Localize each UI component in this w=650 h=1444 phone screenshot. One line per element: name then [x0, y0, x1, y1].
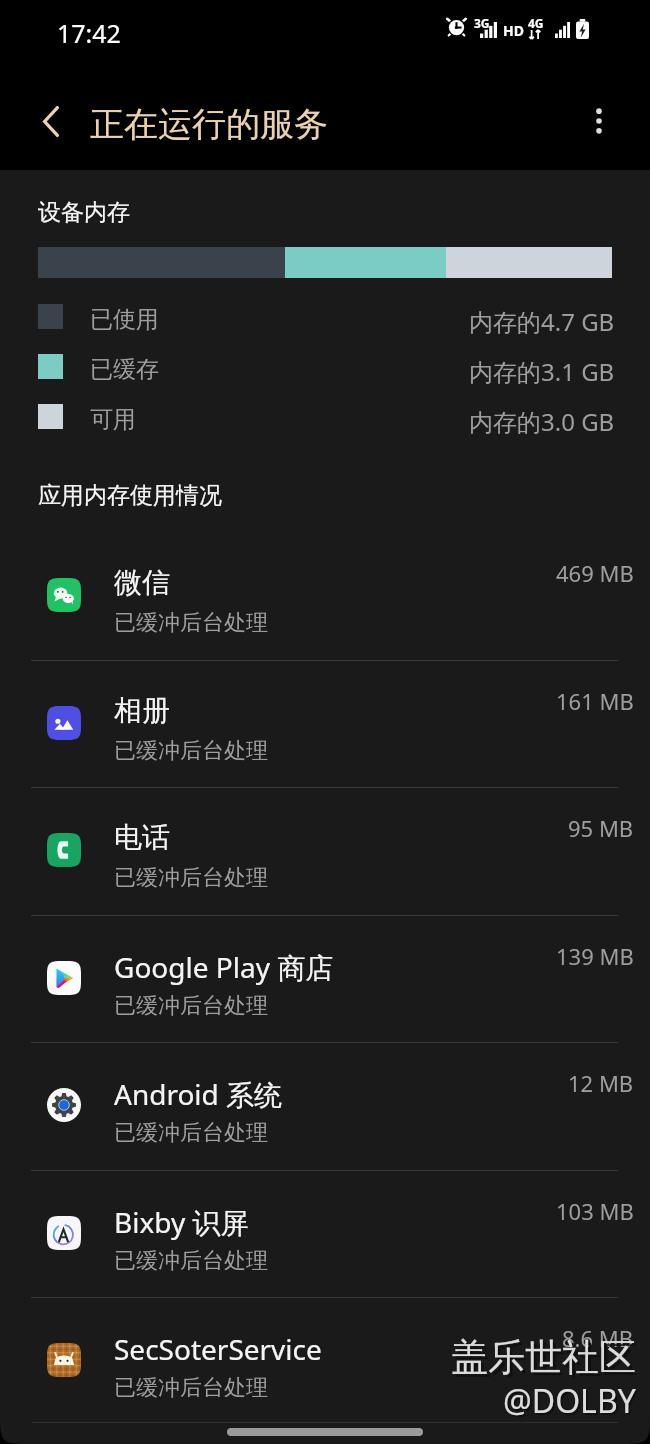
- button[interactable]: 相册: [0, 660, 650, 788]
- staticText: 103 MB: [556, 1196, 634, 1226]
- staticText: 139 MB: [556, 941, 634, 971]
- staticText: 正在运行的服务: [90, 103, 328, 146]
- staticText: 相册: [114, 693, 170, 728]
- button[interactable]: Google Play 商店: [0, 915, 650, 1043]
- staticText: 内存的3.0 GB: [469, 405, 615, 438]
- staticText: 8.6 MB: [562, 1323, 634, 1353]
- staticText: 已缓冲后台处理: [114, 992, 268, 1020]
- button[interactable]: More options: [575, 96, 623, 146]
- staticText: HD: [503, 21, 524, 40]
- staticText: 电话: [114, 820, 170, 855]
- staticText: 内存的3.1 GB: [469, 355, 615, 388]
- staticText: 应用内存使用情况: [38, 481, 222, 510]
- button[interactable]: 电话: [0, 787, 650, 915]
- staticText: 161 MB: [556, 686, 634, 716]
- staticText: Google Play 商店: [114, 948, 334, 986]
- staticText: 469 MB: [556, 558, 634, 588]
- staticText: SecSoterService: [114, 1330, 322, 1368]
- staticText: 内存的4.7 GB: [469, 305, 615, 338]
- staticText: 已缓冲后台处理: [114, 1119, 268, 1147]
- staticText: @DOLBY: [505, 1381, 638, 1425]
- staticText: 3G: [474, 15, 490, 31]
- button[interactable]: 微信: [0, 532, 650, 660]
- staticText: Bixby 识屏: [114, 1203, 249, 1241]
- button[interactable]: Bixby 识屏: [0, 1170, 650, 1298]
- staticText: 已缓冲后台处理: [114, 1247, 268, 1275]
- staticText: 已缓冲后台处理: [114, 609, 268, 637]
- button[interactable]: Android 系统: [0, 1042, 650, 1170]
- button[interactable]: SecSoterService: [0, 1297, 650, 1425]
- button[interactable]: Back: [33, 96, 69, 146]
- staticText: @DOLBY: [503, 1379, 636, 1423]
- staticText: 盖乐世社区: [454, 1337, 639, 1384]
- staticText: 已缓冲后台处理: [114, 1374, 268, 1402]
- staticText: 已缓冲后台处理: [114, 737, 268, 765]
- staticText: Android 系统: [114, 1075, 283, 1113]
- staticText: 4G: [528, 15, 544, 31]
- staticText: 95 MB: [568, 813, 634, 843]
- staticText: 设备内存: [38, 198, 130, 227]
- staticText: 已使用: [90, 305, 159, 334]
- staticText: 可用: [90, 405, 136, 434]
- staticText: 已缓存: [90, 355, 159, 384]
- staticText: 已缓冲后台处理: [114, 864, 268, 892]
- staticText: 12 MB: [568, 1068, 634, 1098]
- staticText: 17:42: [57, 16, 121, 50]
- staticText: 微信: [114, 565, 170, 600]
- staticText: 盖乐世社区: [451, 1334, 636, 1381]
